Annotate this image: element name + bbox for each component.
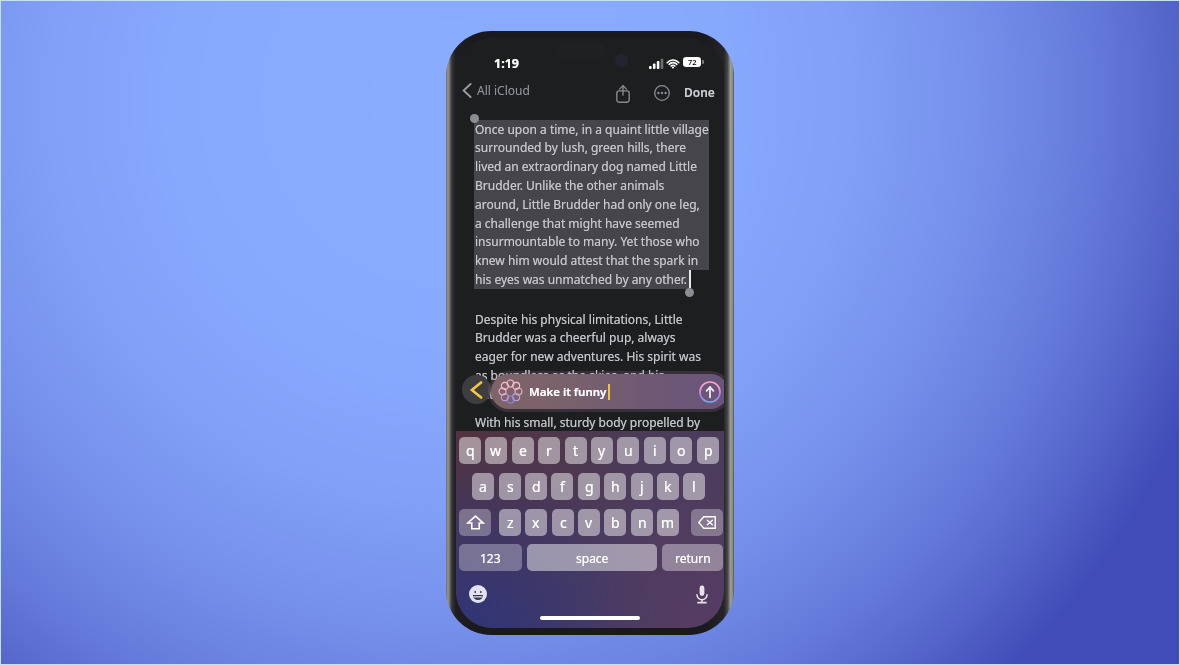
- staticText: his eyes was unmatched by any other.: [475, 271, 688, 287]
- button[interactable]: Done: [680, 80, 719, 104]
- staticText: Once upon a time, in a quaint little vil…: [475, 121, 709, 137]
- button[interactable]: x: [525, 509, 547, 536]
- button[interactable]: d: [525, 473, 547, 500]
- staticText: 123: [480, 550, 501, 566]
- button[interactable]: n: [631, 509, 653, 536]
- staticText: lived an extraordinary dog named Little: [475, 158, 697, 174]
- staticText: h: [611, 477, 620, 496]
- button[interactable]: z: [499, 509, 521, 536]
- staticText: With his small, sturdy body propelled by: [475, 414, 701, 430]
- button[interactable]: l: [683, 473, 705, 500]
- button[interactable]: k: [657, 473, 679, 500]
- button[interactable]: s: [499, 473, 521, 500]
- staticText: r: [546, 441, 552, 460]
- staticText: i: [653, 441, 657, 460]
- button[interactable]: Emoji keyboard: [466, 582, 490, 606]
- button[interactable]: o: [670, 437, 692, 464]
- button[interactable]: e: [512, 437, 534, 464]
- button[interactable]: return: [662, 544, 723, 571]
- staticText: space: [576, 550, 609, 566]
- staticText: eager for new adventures. His spirit was: [475, 348, 701, 364]
- button[interactable]: Delete: [691, 509, 723, 536]
- button[interactable]: t: [565, 437, 587, 464]
- staticText: b: [611, 513, 620, 532]
- button[interactable]: space: [527, 544, 657, 571]
- staticText: g: [585, 477, 594, 496]
- staticText: f: [560, 477, 565, 496]
- button[interactable]: a: [472, 473, 494, 500]
- button[interactable]: f: [551, 473, 573, 500]
- staticText: t: [573, 441, 579, 460]
- button[interactable]: Share: [609, 79, 637, 107]
- button[interactable]: v: [578, 509, 600, 536]
- staticText: j: [640, 477, 644, 496]
- staticText: All iCloud: [477, 82, 530, 98]
- button[interactable]: y: [591, 437, 613, 464]
- button[interactable]: m: [657, 509, 679, 536]
- staticText: n: [638, 513, 647, 532]
- staticText: Done: [684, 84, 715, 100]
- staticText: a challenge that might have seemed: [475, 215, 680, 231]
- staticText: Brudder was a cheerful pup, always: [475, 329, 676, 345]
- staticText: w: [490, 441, 502, 460]
- button[interactable]: c: [552, 509, 574, 536]
- staticText: return: [675, 550, 711, 566]
- staticText: a: [479, 477, 487, 496]
- staticText: u: [624, 441, 633, 460]
- staticText: surrounded by lush, green hills, there: [475, 139, 686, 155]
- button[interactable]: g: [578, 473, 600, 500]
- staticText: Brudder. Unlike the other animals: [475, 177, 665, 193]
- staticText: insurmountable to many. Yet those who: [475, 233, 700, 249]
- button[interactable]: w: [485, 437, 507, 464]
- staticText: c: [560, 513, 567, 532]
- staticText: Make it funny: [529, 384, 607, 400]
- staticText: d: [532, 477, 541, 496]
- button[interactable]: All iCloud: [459, 78, 534, 102]
- staticText: as boundless as the skies, and his: [475, 367, 665, 383]
- button[interactable]: 123: [459, 544, 522, 571]
- button[interactable]: Submit: [697, 379, 723, 405]
- button[interactable]: Dictation: [690, 582, 714, 606]
- staticText: z: [507, 513, 514, 532]
- staticText: k: [664, 477, 672, 496]
- staticText: v: [585, 513, 593, 532]
- staticText: q: [466, 441, 475, 460]
- button[interactable]: Back: [462, 375, 491, 404]
- staticText: a custom-designed little cart, he could: [475, 432, 690, 448]
- button[interactable]: p: [697, 437, 719, 464]
- button[interactable]: More options: [647, 78, 676, 107]
- button[interactable]: q: [459, 437, 481, 464]
- staticText: p: [704, 441, 713, 460]
- button[interactable]: u: [617, 437, 639, 464]
- staticText: o: [677, 441, 686, 460]
- button[interactable]: Make it funny: [491, 374, 724, 409]
- button[interactable]: j: [631, 473, 653, 500]
- staticText: 1:19: [494, 55, 519, 72]
- staticText: e: [519, 441, 527, 460]
- button[interactable]: b: [604, 509, 626, 536]
- staticText: around, Little Brudder had only one leg,: [475, 196, 700, 212]
- staticText: y: [598, 441, 606, 460]
- staticText: knew him would attest that the spark in: [475, 252, 699, 268]
- button[interactable]: r: [538, 437, 560, 464]
- staticText: s: [507, 477, 514, 496]
- staticText: l: [692, 477, 696, 496]
- staticText: x: [532, 513, 540, 532]
- staticText: Despite his physical limitations, Little: [475, 311, 683, 327]
- staticText: m: [661, 513, 675, 532]
- button[interactable]: i: [644, 437, 666, 464]
- staticText: 72: [688, 57, 697, 67]
- button[interactable]: Shift: [459, 509, 491, 536]
- staticText: determination was unwavering.: [475, 386, 654, 402]
- button[interactable]: h: [604, 473, 626, 500]
